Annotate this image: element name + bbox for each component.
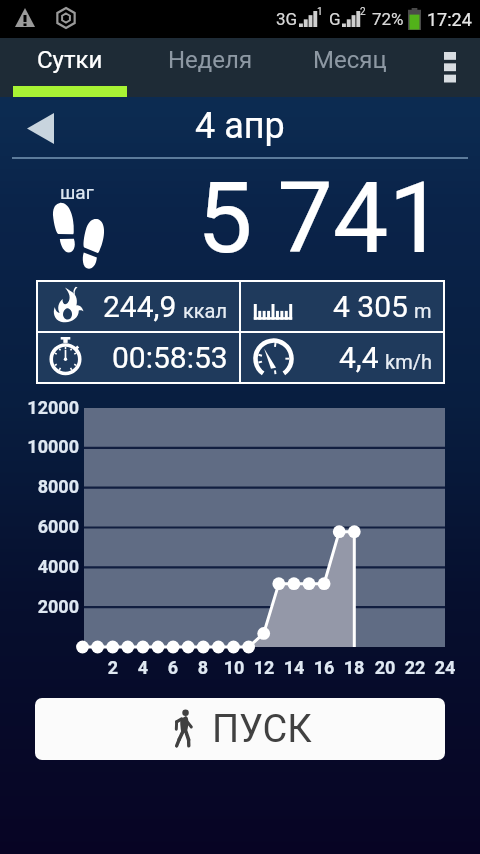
staticText: m [414, 299, 432, 322]
button[interactable]: ПУСК [35, 698, 445, 760]
staticText: 4 305 [333, 289, 408, 324]
staticText: Неделя [168, 46, 253, 74]
staticText: 72% [372, 9, 404, 29]
staticText: 1 [317, 6, 323, 18]
staticText: ккал [183, 299, 228, 322]
staticText: шаг [60, 181, 94, 203]
staticText: 12000 [9, 397, 79, 418]
staticText: 10000 [9, 436, 79, 457]
button[interactable]: 00:58:53 [38, 333, 239, 382]
staticText: 8000 [9, 476, 79, 497]
staticText: km/h [385, 350, 432, 373]
staticText: 6 [158, 657, 188, 678]
staticText: 4,4 [339, 340, 379, 375]
staticText: 3G [276, 9, 298, 29]
staticText: 24 [430, 657, 460, 678]
staticText: 22 [400, 657, 430, 678]
button[interactable]: More options [420, 38, 480, 97]
staticText: Сутки [37, 46, 103, 74]
staticText: 10 [219, 657, 249, 678]
staticText: 00:58:53 [112, 340, 228, 375]
staticText: 4000 [9, 556, 79, 577]
staticText: 8 [188, 657, 218, 678]
staticText: Месяц [313, 46, 387, 74]
staticText: 2000 [9, 596, 79, 617]
staticText: 20 [370, 657, 400, 678]
staticText: 18 [339, 657, 369, 678]
button[interactable]: 244,9 [38, 282, 239, 331]
button[interactable]: Сутки [0, 38, 140, 97]
staticText: 14 [279, 657, 309, 678]
staticText: 6000 [9, 516, 79, 537]
button[interactable]: 4 305 [241, 282, 443, 331]
staticText: 4 апр [195, 105, 285, 147]
staticText: 4 [128, 657, 158, 678]
staticText: ПУСК [212, 707, 312, 752]
staticText: G [329, 9, 341, 29]
staticText: 2 [360, 6, 366, 18]
staticText: 2 [98, 657, 128, 678]
staticText: 17:24 [427, 9, 472, 30]
staticText: 5 741 [197, 160, 445, 275]
button[interactable]: Неделя [140, 38, 280, 97]
staticText: 12 [249, 657, 279, 678]
button[interactable]: Previous day [18, 106, 62, 150]
staticText: 244,9 [103, 289, 177, 324]
button[interactable]: Месяц [280, 38, 420, 97]
button[interactable]: 4,4 [241, 333, 443, 382]
staticText: 16 [309, 657, 339, 678]
